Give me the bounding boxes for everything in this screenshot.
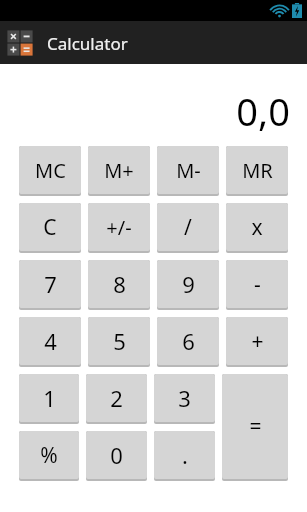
button[interactable]: 2 <box>86 374 147 424</box>
button[interactable]: C <box>19 203 81 253</box>
staticText: C <box>43 213 57 242</box>
button[interactable]: . <box>154 431 215 481</box>
button[interactable]: 0 <box>86 431 147 481</box>
button[interactable]: +/- <box>88 203 150 253</box>
button[interactable]: 0,0 <box>0 64 307 146</box>
staticText: 5 <box>113 326 126 356</box>
staticText: MC <box>35 157 66 184</box>
other: Battery charging <box>292 3 302 18</box>
staticText: . <box>182 440 188 470</box>
staticText: - <box>254 270 261 299</box>
staticText: 1 <box>43 383 56 413</box>
staticText: +/- <box>106 214 132 241</box>
staticText: % <box>40 441 58 470</box>
button[interactable]: 7 <box>19 260 81 310</box>
staticText: 4 <box>44 326 57 356</box>
button[interactable]: - <box>226 260 288 310</box>
button[interactable]: 5 <box>88 317 150 367</box>
button[interactable]: / <box>157 203 219 253</box>
staticText: x <box>251 213 263 242</box>
other: Calculator app icon <box>5 28 35 58</box>
staticText: MR <box>242 157 273 184</box>
button[interactable]: % <box>19 431 79 481</box>
button[interactable]: = <box>222 374 288 481</box>
button[interactable]: 8 <box>88 260 150 310</box>
staticText: 8 <box>113 269 126 299</box>
button[interactable]: + <box>226 317 288 367</box>
button[interactable]: MC <box>19 146 81 196</box>
staticText: = <box>249 412 262 441</box>
button[interactable]: 4 <box>19 317 81 367</box>
staticText: M+ <box>104 157 134 184</box>
staticText: / <box>184 213 192 242</box>
button[interactable]: x <box>226 203 288 253</box>
staticText: 9 <box>182 269 195 299</box>
staticText: 2 <box>110 383 123 413</box>
staticText: + <box>251 327 264 356</box>
button[interactable]: 6 <box>157 317 219 367</box>
staticText: 0,0 <box>236 85 290 137</box>
button[interactable]: 9 <box>157 260 219 310</box>
button[interactable]: MR <box>226 146 288 196</box>
button[interactable]: 3 <box>154 374 215 424</box>
other: Wi-Fi signal <box>271 4 288 18</box>
staticText: 7 <box>44 269 57 299</box>
staticText: 0 <box>110 440 123 470</box>
staticText: 3 <box>178 383 191 413</box>
button[interactable]: M+ <box>88 146 150 196</box>
button[interactable]: M- <box>157 146 219 196</box>
staticText: M- <box>176 157 201 184</box>
staticText: Calculator <box>47 32 128 55</box>
button[interactable]: 1 <box>19 374 79 424</box>
staticText: 6 <box>182 326 195 356</box>
